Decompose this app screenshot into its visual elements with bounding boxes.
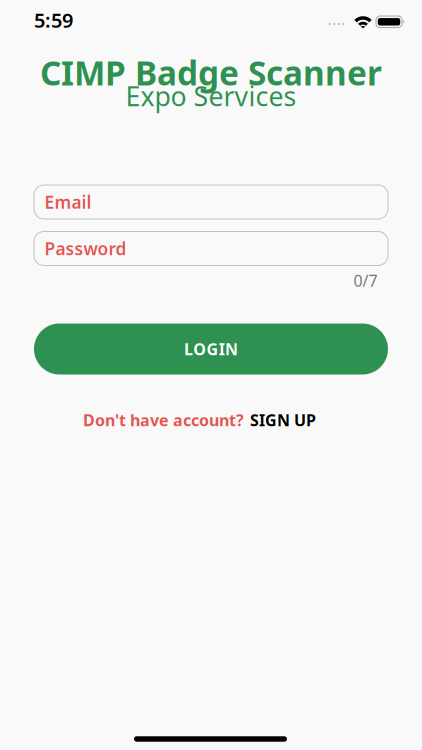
button[interactable]: Don't have account? <box>83 409 316 431</box>
button[interactable]: LOGIN <box>34 323 388 374</box>
staticText: 5:59 <box>34 7 73 33</box>
staticText: 0/7 <box>353 270 377 291</box>
staticText: Expo Services <box>125 78 296 114</box>
staticText: Don't have account? <box>83 409 244 431</box>
staticText: LOGIN <box>184 338 238 360</box>
button[interactable]: Password <box>34 231 388 265</box>
button[interactable]: Email <box>34 185 388 219</box>
staticText: Email <box>44 190 91 213</box>
staticText: CIMP Badge Scanner <box>40 50 382 95</box>
staticText: Password <box>44 237 126 260</box>
staticText: SIGN UP <box>250 409 316 431</box>
